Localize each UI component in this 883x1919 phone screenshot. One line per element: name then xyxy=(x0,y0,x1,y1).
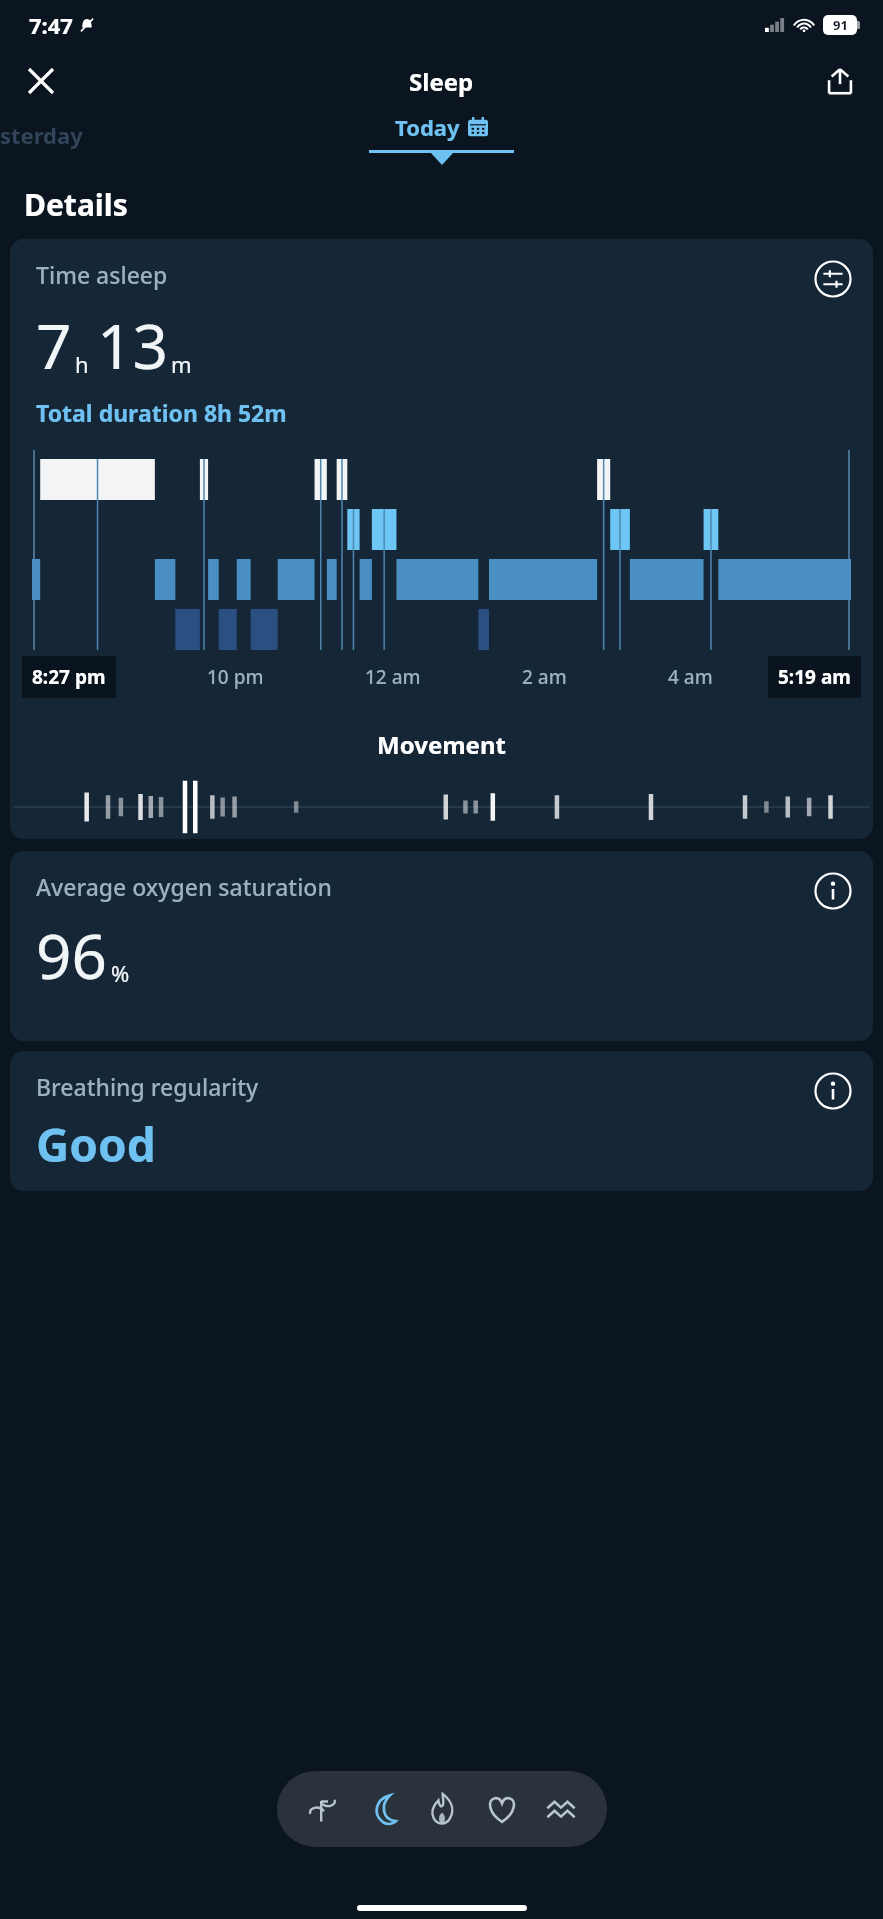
staticText: 91 xyxy=(833,16,848,34)
button[interactable]: Heart xyxy=(474,1781,530,1837)
staticText: Sleep xyxy=(409,65,474,98)
staticText: 96 xyxy=(36,913,107,997)
staticText: m xyxy=(171,349,192,379)
staticText: 2 am xyxy=(522,664,567,690)
button[interactable]: Today xyxy=(369,112,514,165)
button[interactable]: Info xyxy=(813,871,853,911)
staticText: Movement xyxy=(10,728,873,761)
button[interactable]: Sleep xyxy=(354,1781,410,1837)
button[interactable]: Average oxygen saturation xyxy=(10,851,873,1041)
button[interactable]: Body xyxy=(295,1781,351,1837)
staticText: Total duration 8h 52m xyxy=(36,397,287,428)
staticText: 8:27 pm xyxy=(32,664,106,690)
staticText: 5:19 am xyxy=(778,664,851,690)
staticText: 10 pm xyxy=(207,664,264,690)
staticText: Details xyxy=(24,184,128,225)
staticText: Breathing regularity xyxy=(36,1071,259,1102)
button[interactable]: Adjust sleep xyxy=(813,259,853,299)
staticText: % xyxy=(111,958,130,988)
staticText: h xyxy=(75,349,89,379)
staticText: Today xyxy=(395,112,460,142)
button[interactable]: Info xyxy=(813,1071,853,1111)
staticText: 7 xyxy=(36,303,72,387)
staticText: 4 am xyxy=(668,664,713,690)
button[interactable]: Breathing regularity xyxy=(10,1051,873,1191)
button[interactable]: Trends xyxy=(533,1781,589,1837)
button[interactable]: Energy xyxy=(414,1781,470,1837)
button[interactable]: Share xyxy=(817,58,863,104)
button[interactable]: sterday xyxy=(0,120,83,150)
staticText: 7:47 xyxy=(29,10,73,40)
staticText: Time asleep xyxy=(36,259,168,290)
staticText: 12 am xyxy=(365,664,421,690)
button[interactable]: Close xyxy=(18,58,64,104)
staticText: Average oxygen saturation xyxy=(36,871,332,902)
staticText: Good xyxy=(36,1113,156,1176)
button[interactable]: Time asleep xyxy=(10,239,873,839)
staticText: 13 xyxy=(97,303,168,387)
